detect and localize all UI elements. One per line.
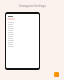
button[interactable] bbox=[6, 25, 39, 27]
button[interactable] bbox=[6, 37, 39, 39]
button[interactable] bbox=[6, 31, 39, 33]
button[interactable] bbox=[6, 23, 39, 25]
button[interactable] bbox=[6, 21, 39, 23]
button[interactable] bbox=[7, 18, 15, 20]
button[interactable] bbox=[6, 33, 39, 35]
button[interactable] bbox=[6, 27, 39, 29]
button[interactable] bbox=[6, 35, 39, 37]
staticText: Instagram Settings bbox=[19, 4, 46, 8]
button[interactable] bbox=[6, 29, 39, 31]
button[interactable] bbox=[6, 45, 39, 47]
button[interactable]: Logo bbox=[54, 72, 59, 77]
button[interactable] bbox=[6, 39, 39, 41]
button[interactable] bbox=[6, 43, 39, 45]
button[interactable] bbox=[6, 41, 39, 43]
